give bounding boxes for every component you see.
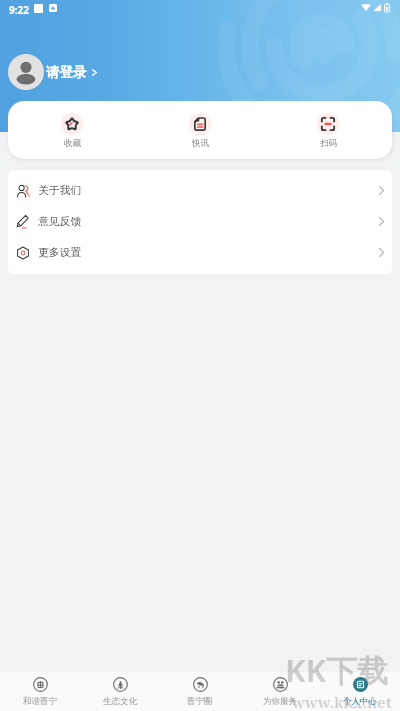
button[interactable]: 扫码 [264,101,392,149]
staticText: 快讯 [192,138,209,149]
button[interactable]: 和谐晋宁 [0,672,80,707]
staticText: 个人中心 [343,696,377,707]
button[interactable]: 快讯 [136,101,264,149]
staticText: 和谐晋宁 [23,696,57,707]
staticText: 关于我们 [38,184,82,198]
button[interactable]: 晋宁圈 [160,672,240,707]
staticText: 请登录 [46,64,87,81]
button[interactable]: 个人中心 [320,672,400,707]
staticText: 收藏 [64,138,81,149]
button[interactable]: 生态文化 [80,672,160,707]
staticText: 为你服务 [263,696,297,707]
staticText: www.kkx.net [292,692,392,711]
staticText: KK下载 [285,649,389,691]
staticText: 9:22 [9,3,29,17]
button[interactable]: 关于我们 [8,175,392,206]
button[interactable]: 收藏 [8,101,136,149]
staticText: 生态文化 [103,696,137,707]
button[interactable]: 请登录 [8,54,99,90]
staticText: 扫码 [320,138,337,149]
staticText: 更多设置 [38,246,82,260]
button[interactable]: 为你服务 [240,672,320,707]
staticText: 晋宁圈 [187,696,213,707]
button[interactable]: 意见反馈 [8,206,392,237]
button[interactable]: 更多设置 [8,237,392,268]
staticText: 意见反馈 [38,215,82,229]
